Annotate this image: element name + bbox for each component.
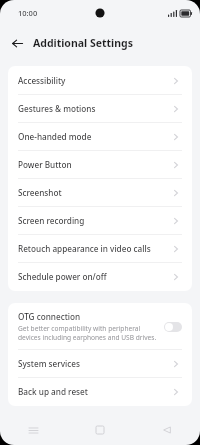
- staticText: One-handed mode: [18, 131, 172, 142]
- staticText: Accessibility: [18, 75, 172, 86]
- staticText: Get better compatibility with peripheral…: [18, 324, 158, 342]
- staticText: Retouch appearance in video calls: [18, 243, 172, 254]
- staticText: 10:00: [18, 8, 38, 18]
- staticText: System services: [18, 358, 172, 369]
- staticText: Back up and reset: [18, 386, 172, 397]
- staticText: Power Button: [18, 159, 172, 170]
- button[interactable]: Gestures & motions: [8, 95, 192, 122]
- button[interactable]: Power Button: [8, 151, 192, 178]
- button[interactable]: Back: [9, 35, 26, 52]
- staticText: Additional Settings: [33, 36, 133, 50]
- button[interactable]: Retouch appearance in video calls: [8, 235, 192, 262]
- button[interactable]: Recent apps: [0, 418, 66, 442]
- button[interactable]: Back up and reset: [8, 378, 192, 405]
- button[interactable]: System services: [8, 350, 192, 377]
- button[interactable]: OTG connection: [8, 304, 192, 349]
- button[interactable]: Home: [66, 418, 133, 442]
- button[interactable]: Screen recording: [8, 207, 192, 234]
- button[interactable]: Schedule power on/off: [8, 263, 192, 290]
- button[interactable]: OTG connection toggle: [164, 322, 182, 332]
- staticText: Screenshot: [18, 187, 172, 198]
- button[interactable]: Back: [133, 418, 200, 442]
- button[interactable]: Accessibility: [8, 67, 192, 94]
- button[interactable]: One-handed mode: [8, 123, 192, 150]
- button[interactable]: Screenshot: [8, 179, 192, 206]
- staticText: Schedule power on/off: [18, 271, 172, 282]
- staticText: Screen recording: [18, 215, 172, 226]
- staticText: OTG connection: [18, 311, 81, 322]
- staticText: Gestures & motions: [18, 103, 172, 114]
